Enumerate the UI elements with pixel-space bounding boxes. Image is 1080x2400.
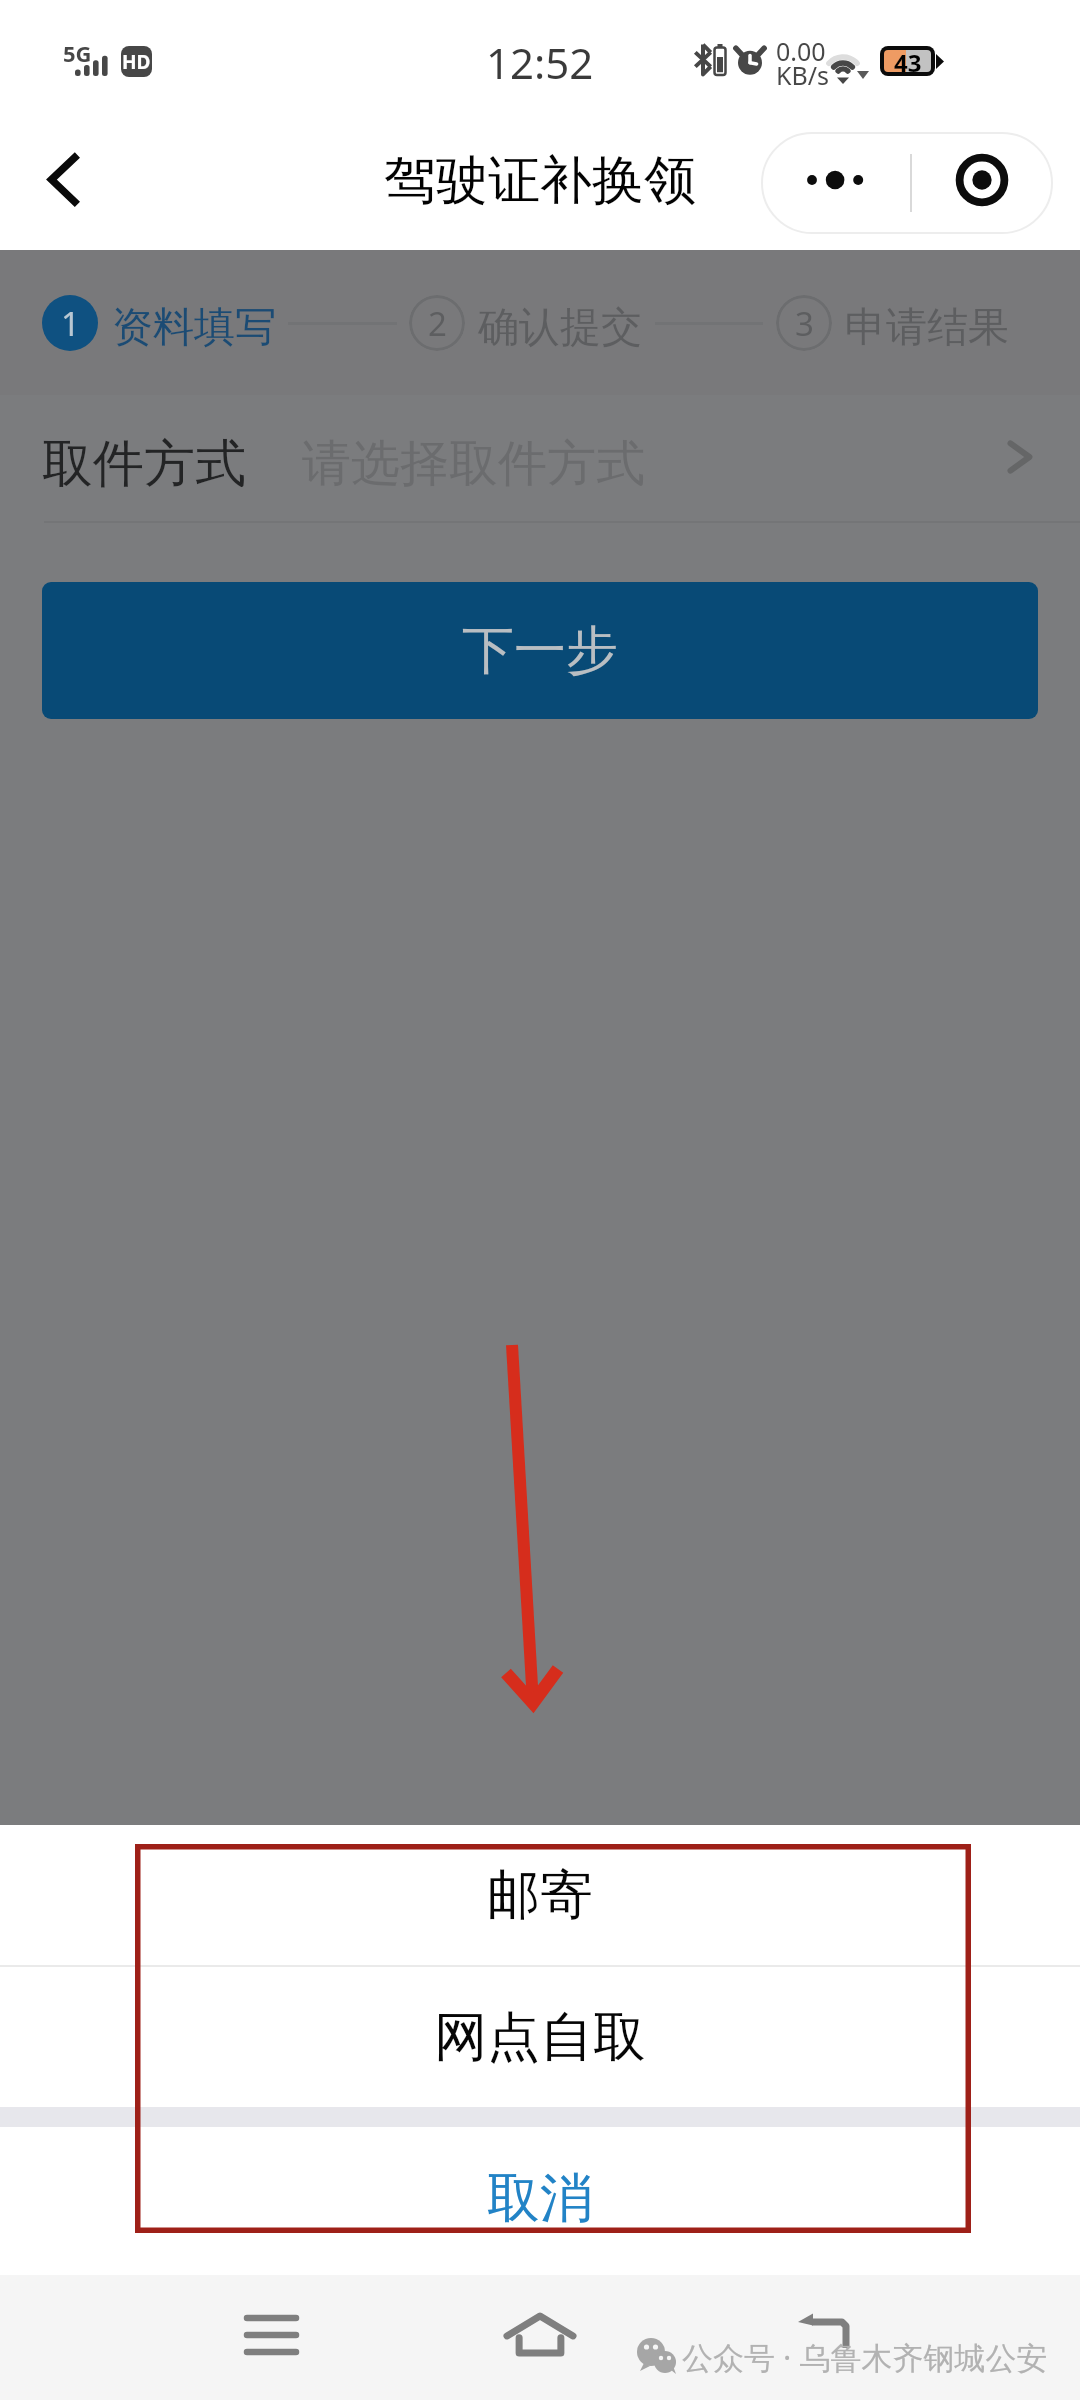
button[interactable]: 网点自取 [0, 1967, 1080, 2107]
button[interactable]: 下一步 [42, 582, 1038, 719]
staticText: 驾驶证补换领 [384, 148, 696, 214]
staticText: 2 [428, 301, 447, 346]
button[interactable]: 邮寄 [0, 1825, 1080, 1965]
button[interactable]: Close mini program [912, 133, 1052, 233]
staticText: 下一步 [462, 618, 618, 684]
staticText: KB/s [776, 58, 830, 92]
staticText: 3 [795, 301, 814, 346]
staticText: 0.00 [776, 34, 826, 68]
button[interactable]: Home [490, 2280, 590, 2390]
staticText: 取消 [487, 2165, 593, 2232]
staticText: 确认提交 [478, 302, 642, 354]
staticText: HD [122, 49, 151, 75]
button[interactable]: Back [20, 134, 110, 224]
staticText: 网点自取 [434, 2004, 646, 2071]
staticText: 12:52 [486, 34, 594, 91]
staticText: 5G [63, 38, 92, 68]
button[interactable]: Recent apps [221, 2280, 321, 2390]
staticText: 申请结果 [845, 302, 1009, 354]
button[interactable]: 取件方式 [0, 395, 1080, 521]
staticText: 请选择取件方式 [302, 433, 645, 495]
button[interactable]: 取消 [0, 2127, 1080, 2275]
staticText: 邮寄 [487, 1862, 593, 1929]
button[interactable]: Back [780, 2275, 870, 2395]
staticText: 1 [61, 301, 80, 346]
staticText: 43 [894, 46, 922, 79]
staticText: 资料填写 [112, 302, 276, 354]
staticText: 公众号 · 乌鲁木齐钢城公安 [682, 2336, 1048, 2378]
button[interactable]: More options [762, 133, 910, 233]
staticText: 取件方式 [42, 432, 246, 496]
